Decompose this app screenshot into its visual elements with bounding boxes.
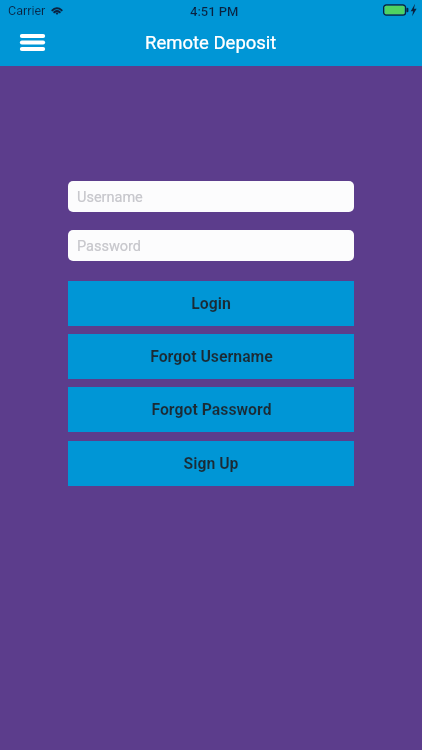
staticText: Forgot Password	[151, 400, 272, 419]
button[interactable]: Password	[68, 230, 354, 261]
button[interactable]: Login	[68, 281, 354, 326]
staticText: Sign Up	[183, 454, 239, 473]
button[interactable]: Menu	[10, 25, 54, 61]
staticText: Password	[77, 238, 142, 255]
button[interactable]: Username	[68, 181, 354, 212]
staticText: Login	[191, 294, 231, 313]
staticText: Forgot Username	[150, 347, 273, 366]
button[interactable]: Sign Up	[68, 441, 354, 486]
staticText: Username	[77, 189, 143, 206]
staticText: Remote Deposit	[145, 32, 277, 54]
button[interactable]: Forgot Password	[68, 387, 354, 432]
button[interactable]: Forgot Username	[68, 334, 354, 379]
staticText: Carrier	[8, 3, 46, 18]
staticText: 4:51 PM	[190, 4, 239, 19]
